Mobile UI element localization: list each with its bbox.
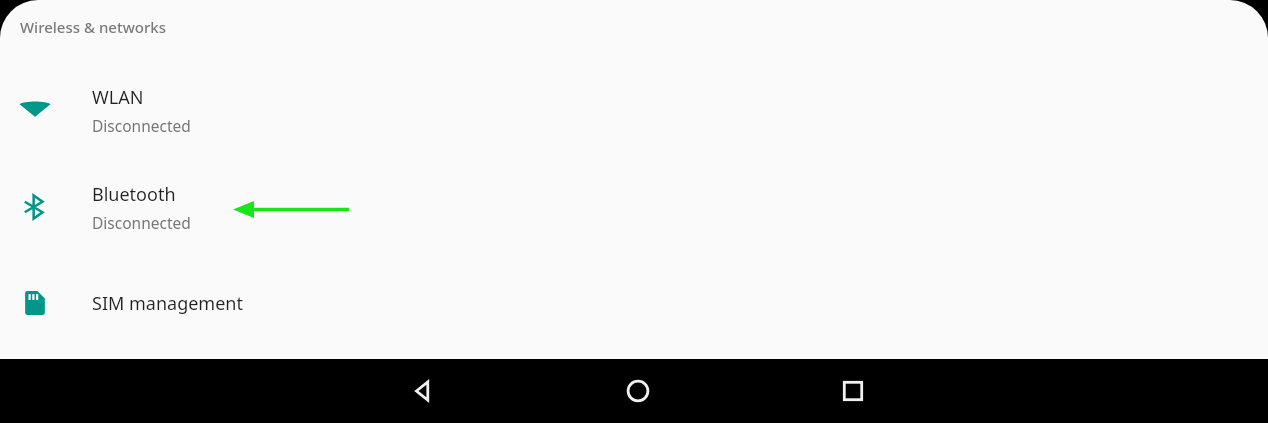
- button[interactable]: Back: [390, 359, 456, 423]
- staticText: SIM management: [92, 291, 243, 316]
- staticText: Disconnected: [92, 115, 191, 136]
- staticText: WLAN: [92, 85, 144, 110]
- staticText: Bluetooth: [92, 182, 176, 207]
- staticText: Wireless & networks: [20, 17, 166, 37]
- button[interactable]: Home: [605, 359, 671, 423]
- button[interactable]: WLAN: [0, 78, 1268, 142]
- button[interactable]: Bluetooth: [0, 175, 1268, 239]
- staticText: Disconnected: [92, 212, 191, 233]
- button[interactable]: Recent apps: [820, 359, 886, 423]
- button[interactable]: SIM management: [0, 275, 1268, 331]
